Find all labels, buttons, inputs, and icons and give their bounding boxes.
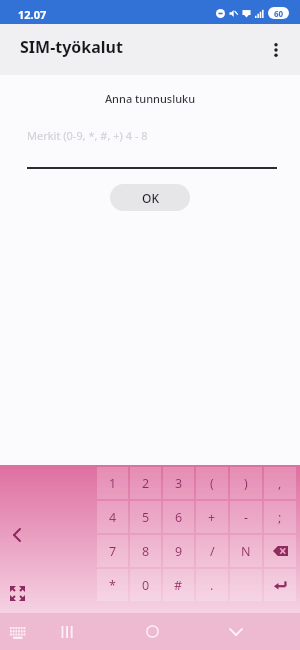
button[interactable]: ) [230,467,262,499]
staticText: ( [210,475,214,492]
staticText: - [244,509,249,526]
button[interactable] [230,569,262,601]
button[interactable]: Hide keyboard [221,617,250,646]
button[interactable]: ; [264,501,296,533]
staticText: 12.07 [18,7,47,22]
staticText: ) [244,475,248,492]
staticText: Anna tunnusluku [0,91,300,106]
button[interactable]: 9 [163,535,194,567]
staticText: OK [142,190,159,206]
button[interactable]: More options [258,32,294,68]
button[interactable]: N [230,535,262,567]
button[interactable]: * [97,569,128,601]
button[interactable]: + [196,501,228,533]
button[interactable]: Change keyboard [4,618,32,646]
staticText: * [109,577,116,594]
button[interactable]: 8 [130,535,161,567]
staticText: 2 [142,475,150,492]
staticText: 0 [142,577,150,594]
staticText: , [278,475,282,492]
staticText: 4 [109,509,117,526]
button[interactable]: 7 [97,535,128,567]
staticText: 7 [109,543,117,560]
staticText: 5 [142,509,150,526]
button[interactable]: 1 [97,467,128,499]
button[interactable]: 2 [130,467,161,499]
button[interactable]: / [196,535,228,567]
button[interactable]: , [264,467,296,499]
button[interactable]: 6 [163,501,194,533]
other: Enter [274,580,287,590]
button[interactable]: Back [6,524,28,546]
staticText: Merkit (0-9, *, #, +) 4 - 8 [27,128,148,143]
button[interactable]: Enter [264,569,296,601]
button[interactable]: Backspace [264,535,296,567]
button[interactable]: # [163,569,194,601]
staticText: 60 [274,8,284,19]
staticText: SIM-työkalut [20,36,123,58]
staticText: # [174,577,183,594]
button[interactable]: Home [138,617,167,646]
button[interactable]: OK [110,184,190,211]
staticText: N [241,543,251,560]
button[interactable]: 3 [163,467,194,499]
button[interactable]: 5 [130,501,161,533]
button[interactable]: 0 [130,569,161,601]
staticText: 3 [175,475,183,492]
staticText: 9 [175,543,183,560]
staticText: 1 [109,475,117,492]
staticText: / [210,543,215,560]
button[interactable]: ( [196,467,228,499]
button[interactable]: . [196,569,228,601]
button[interactable]: - [230,501,262,533]
other: Backspace [273,546,288,556]
staticText: . [210,577,214,594]
staticText: + [208,509,216,526]
staticText: 6 [175,509,183,526]
staticText: 8 [142,543,150,560]
button[interactable]: Expand keyboard [7,583,28,604]
button[interactable]: Recents [52,617,81,646]
button[interactable]: 4 [97,501,128,533]
staticText: ; [278,509,282,526]
